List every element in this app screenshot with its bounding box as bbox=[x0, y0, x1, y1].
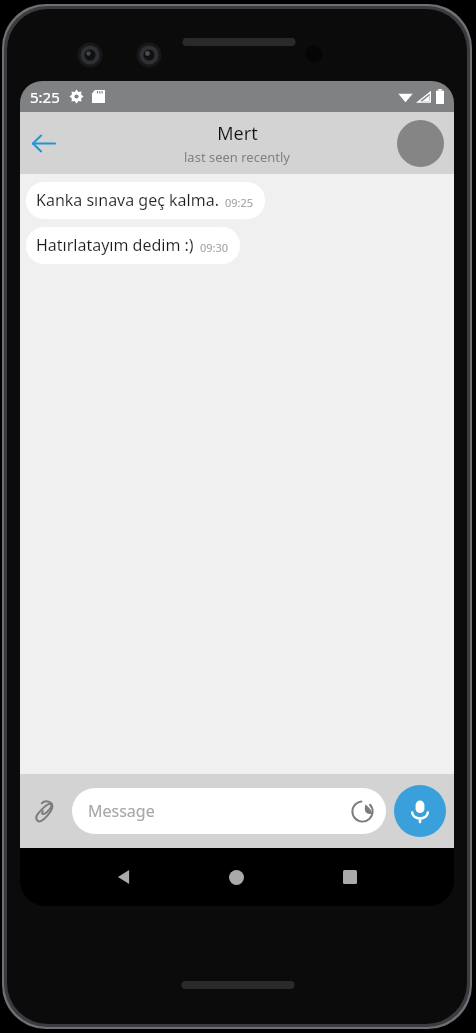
button[interactable]: Message bbox=[72, 788, 386, 834]
button[interactable]: Home bbox=[180, 848, 293, 906]
staticText: 5:25 bbox=[30, 87, 60, 107]
staticText: Message bbox=[88, 800, 155, 822]
button[interactable]: Record voice message bbox=[394, 785, 446, 837]
staticText: Kanka sınava geç kalma. bbox=[36, 189, 219, 211]
button[interactable]: Mert bbox=[20, 121, 454, 166]
button[interactable]: Recent apps bbox=[293, 848, 406, 906]
button[interactable]: Back bbox=[20, 119, 68, 167]
staticText: Hatırlatayım dedim :) bbox=[36, 234, 194, 256]
staticText: 09:30 bbox=[200, 240, 229, 255]
staticText: last seen recently bbox=[184, 148, 290, 166]
button[interactable]: Hatırlatayım dedim :) bbox=[26, 227, 240, 264]
staticText: 09:25 bbox=[225, 195, 254, 210]
button[interactable]: Stickers bbox=[347, 796, 377, 826]
button[interactable]: Kanka sınava geç kalma. bbox=[26, 182, 265, 219]
button[interactable]: Profile photo bbox=[397, 120, 444, 167]
button[interactable]: Attach bbox=[26, 790, 68, 832]
staticText: Mert bbox=[217, 121, 258, 146]
button[interactable]: Back bbox=[68, 848, 180, 906]
